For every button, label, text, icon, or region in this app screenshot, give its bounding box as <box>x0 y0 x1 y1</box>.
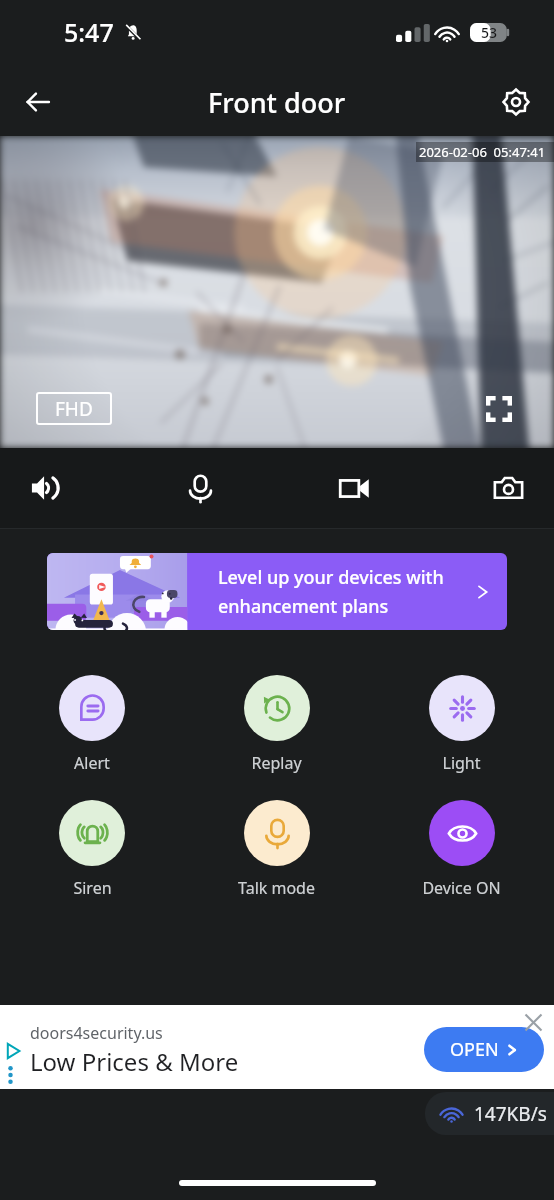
button[interactable]: Alert <box>0 675 184 774</box>
button[interactable]: Fullscreen <box>478 388 520 430</box>
staticText: Device ON <box>422 877 501 899</box>
button[interactable]: Light <box>369 675 554 774</box>
staticText: 2026-02-06 05:47:41 <box>419 143 546 161</box>
button[interactable]: Close ad <box>518 1007 548 1037</box>
staticText: Level up your devices with <box>218 565 444 590</box>
button[interactable]: Siren <box>0 800 184 899</box>
staticText: doors4security.us <box>30 1022 163 1044</box>
button[interactable]: Replay <box>184 675 369 774</box>
staticText: Light <box>442 752 481 774</box>
button[interactable]: Settings <box>494 80 538 124</box>
staticText: enhancement plans <box>218 594 389 619</box>
staticText: 147KB/s <box>474 1101 547 1127</box>
button[interactable]: Record video <box>330 464 378 512</box>
button[interactable]: Device ON <box>369 800 554 899</box>
staticText: Low Prices & More <box>30 1045 239 1078</box>
staticText: 5:47 <box>64 15 114 49</box>
staticText: Talk mode <box>238 877 315 899</box>
staticText: 53 <box>481 23 498 42</box>
button[interactable]: Snapshot <box>484 464 532 512</box>
staticText: Replay <box>251 752 302 774</box>
button[interactable]: 147KB/s <box>439 1092 547 1135</box>
staticText: Front door <box>208 84 346 121</box>
button[interactable]: Microphone <box>176 464 224 512</box>
staticText: Siren <box>73 877 112 899</box>
staticText: OPEN <box>450 1037 499 1062</box>
button[interactable]: Talk mode <box>184 800 369 899</box>
staticText: Alert <box>74 752 110 774</box>
button[interactable]: FHD <box>36 392 112 425</box>
button[interactable]: Level up your devices with <box>47 553 507 630</box>
staticText: FHD <box>55 396 93 422</box>
button[interactable]: Back <box>14 78 62 126</box>
button[interactable]: OPEN <box>424 1027 544 1072</box>
button[interactable]: doors4security.us <box>0 1005 554 1089</box>
button[interactable]: Volume <box>22 464 70 512</box>
